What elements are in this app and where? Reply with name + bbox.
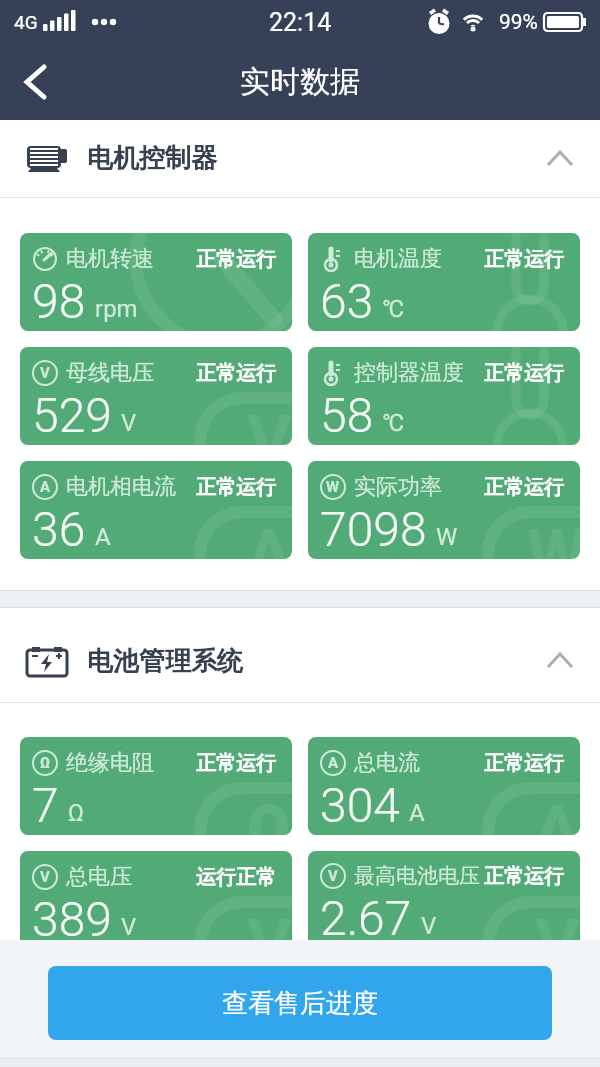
staticText: V [421, 912, 437, 940]
staticText: 正常运行 [196, 751, 276, 776]
staticText: 正常运行 [196, 475, 276, 500]
staticText: 电机转速 [66, 245, 154, 273]
staticText: 98 [32, 273, 86, 328]
staticText: 正常运行 [196, 361, 276, 386]
button[interactable]: W [308, 461, 580, 559]
staticText: V [247, 905, 292, 949]
staticText: 实时数据 [240, 63, 360, 101]
button[interactable]: Ω [20, 737, 292, 835]
staticText: V [40, 364, 50, 382]
staticText: A [40, 478, 51, 496]
staticText: Ω [68, 799, 84, 827]
staticText: 正常运行 [484, 361, 564, 386]
button[interactable]: 电池管理系统 [0, 608, 600, 702]
button[interactable]: V [20, 347, 292, 445]
staticText: W [326, 478, 340, 496]
staticText: A [328, 754, 339, 772]
staticText: V [247, 401, 292, 445]
staticText: 正常运行 [484, 475, 564, 500]
staticText: 正常运行 [196, 247, 276, 272]
staticText: 电机控制器 [87, 142, 217, 175]
staticText: 2.67 [320, 890, 412, 946]
button[interactable] [24, 65, 46, 99]
staticText: A [246, 515, 292, 559]
staticText: W [527, 515, 580, 559]
staticText: Ω [246, 791, 292, 835]
button[interactable]: V [308, 851, 580, 949]
staticText: 4G [14, 11, 38, 33]
staticText: V [121, 913, 137, 941]
staticText: 22:14 [269, 8, 332, 37]
staticText: 电池管理系统 [87, 645, 243, 678]
staticText: A [409, 799, 425, 827]
button[interactable]: 电机温度 [308, 233, 580, 331]
staticText: V [328, 867, 338, 885]
button[interactable]: 控制器温度 [308, 347, 580, 445]
staticText: 正常运行 [484, 864, 564, 889]
staticText: 实际功率 [354, 473, 442, 501]
staticText: Ω [40, 754, 51, 772]
staticText: 63 [320, 273, 374, 328]
staticText: 电机温度 [354, 245, 442, 273]
staticText: 电机相电流 [66, 473, 176, 501]
button[interactable]: A [20, 461, 292, 559]
staticText: 304 [320, 777, 400, 832]
staticText: 最高电池电压 [354, 863, 480, 889]
staticText: V [121, 409, 137, 437]
staticText: 389 [32, 891, 112, 946]
staticText: 7098 [320, 501, 427, 556]
staticText: 总电流 [354, 749, 420, 777]
staticText: 控制器温度 [354, 359, 464, 387]
staticText: ℃ [383, 295, 405, 323]
staticText: 36 [32, 501, 86, 556]
staticText: V [40, 868, 50, 886]
staticText: 正常运行 [484, 247, 564, 272]
staticText: rpm [95, 295, 138, 323]
button[interactable]: A [308, 737, 580, 835]
staticText: V [535, 905, 580, 949]
button[interactable]: V [20, 851, 292, 949]
staticText: ℃ [383, 409, 405, 437]
staticText: A [534, 791, 580, 835]
staticText: 正常运行 [484, 751, 564, 776]
staticText: 运行正常 [196, 865, 276, 890]
staticText: A [95, 523, 111, 551]
staticText: 总电压 [66, 863, 132, 891]
staticText: 99% [499, 10, 538, 35]
staticText: W [436, 523, 458, 551]
button[interactable]: 查看售后进度 [48, 966, 552, 1040]
staticText: 529 [32, 387, 112, 442]
staticText: 绝缘电阻 [66, 749, 154, 777]
staticText: 母线电压 [66, 359, 154, 387]
staticText: 7 [32, 777, 59, 832]
button[interactable]: 电机控制器 [0, 120, 600, 197]
staticText: 查看售后进度 [222, 987, 378, 1020]
staticText: 58 [320, 387, 374, 442]
button[interactable]: 电机转速 [20, 233, 292, 331]
